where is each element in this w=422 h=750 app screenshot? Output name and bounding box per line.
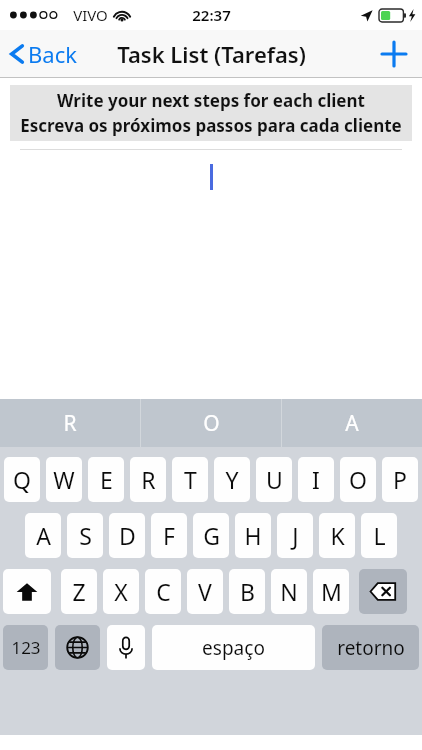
staticText: U — [266, 464, 283, 495]
staticText: A — [345, 409, 359, 438]
button[interactable]: S — [67, 513, 103, 558]
button[interactable]: L — [361, 513, 397, 558]
staticText: A — [36, 520, 51, 551]
button[interactable]: M — [313, 569, 349, 614]
button[interactable]: Y — [214, 457, 250, 502]
staticText: P — [393, 464, 407, 495]
button[interactable]: Dictate — [107, 625, 145, 670]
staticText: I — [312, 464, 320, 495]
staticText: D — [119, 520, 136, 551]
button[interactable]: Shift — [3, 569, 51, 614]
staticText: 123 — [11, 636, 41, 659]
staticText: retorno — [337, 635, 405, 661]
button[interactable]: O — [141, 399, 281, 447]
staticText: 22:37 — [192, 5, 231, 25]
button[interactable]: 123 — [3, 625, 48, 670]
staticText: W — [53, 464, 75, 495]
staticText: O — [349, 464, 367, 495]
button[interactable]: Change keyboard language — [55, 625, 100, 670]
staticText: G — [203, 520, 220, 551]
button[interactable]: I — [298, 457, 334, 502]
button[interactable]: retorno — [322, 625, 419, 670]
button[interactable]: A — [282, 399, 422, 447]
button[interactable]: B — [229, 569, 265, 614]
staticText: Back — [28, 39, 77, 69]
staticText: Escreva os próximos passos para cada cli… — [20, 114, 402, 137]
button[interactable]: C — [145, 569, 181, 614]
button[interactable]: W — [46, 457, 82, 502]
staticText: Y — [225, 464, 239, 495]
staticText: Q — [13, 464, 31, 495]
staticText: Task List (Tarefas) — [117, 39, 306, 69]
button[interactable]: D — [109, 513, 145, 558]
staticText: X — [114, 576, 128, 607]
button[interactable]: A — [25, 513, 61, 558]
button[interactable]: N — [271, 569, 307, 614]
staticText: T — [184, 464, 197, 495]
button[interactable]: T — [172, 457, 208, 502]
button[interactable]: E — [88, 457, 124, 502]
button[interactable]: R — [130, 457, 166, 502]
button[interactable]: K — [319, 513, 355, 558]
button[interactable]: R — [0, 399, 140, 447]
staticText: J — [292, 520, 299, 551]
button[interactable]: H — [235, 513, 271, 558]
staticText: espaço — [202, 635, 265, 661]
staticText: M — [321, 576, 342, 607]
staticText: O — [203, 409, 220, 438]
staticText: C — [156, 576, 171, 607]
button[interactable]: V — [187, 569, 223, 614]
staticText: R — [63, 409, 77, 438]
button[interactable]: Z — [61, 569, 97, 614]
button[interactable]: espaço — [152, 625, 315, 670]
button[interactable]: O — [340, 457, 376, 502]
staticText: N — [280, 576, 298, 607]
staticText: F — [163, 520, 175, 551]
button[interactable]: P — [382, 457, 418, 502]
button[interactable]: Backspace — [359, 569, 407, 614]
staticText: Z — [72, 576, 86, 607]
staticText: VIVO — [73, 5, 108, 25]
button[interactable]: X — [103, 569, 139, 614]
staticText: L — [373, 520, 386, 551]
button[interactable]: J — [277, 513, 313, 558]
button[interactable]: F — [151, 513, 187, 558]
staticText: K — [330, 520, 345, 551]
button[interactable]: G — [193, 513, 229, 558]
button[interactable]: Back — [0, 33, 87, 75]
staticText: S — [79, 520, 92, 551]
staticText: V — [198, 576, 212, 607]
button[interactable]: Add task — [366, 32, 422, 76]
button[interactable]: U — [256, 457, 292, 502]
staticText: R — [141, 464, 156, 495]
staticText: B — [240, 576, 255, 607]
button[interactable]: Q — [4, 457, 40, 502]
staticText: H — [244, 520, 262, 551]
staticText: E — [100, 464, 113, 495]
staticText: Write your next steps for each client — [57, 89, 365, 112]
